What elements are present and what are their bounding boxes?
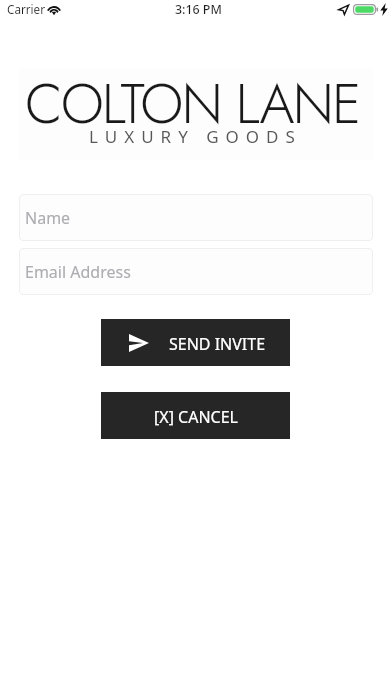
- button[interactable]: [X] CANCEL: [101, 392, 290, 439]
- other: Location services active: [338, 4, 349, 15]
- button[interactable]: Name: [19, 194, 373, 241]
- other: Wi-Fi: [47, 3, 61, 15]
- button[interactable]: Email Address: [19, 248, 373, 295]
- other: Charging: [380, 3, 388, 16]
- staticText: LUXURY GOODS: [89, 125, 302, 148]
- staticText: [X] CANCEL: [154, 406, 238, 428]
- staticText: 3:16 PM: [175, 1, 222, 18]
- button[interactable]: SEND INVITE: [101, 319, 290, 366]
- staticText: Carrier: [7, 1, 46, 17]
- other: Battery full: [353, 4, 379, 15]
- staticText: Name: [25, 207, 71, 229]
- staticText: COLTON LANE: [25, 64, 360, 143]
- staticText: Email Address: [25, 261, 131, 283]
- staticText: SEND INVITE: [169, 333, 266, 355]
